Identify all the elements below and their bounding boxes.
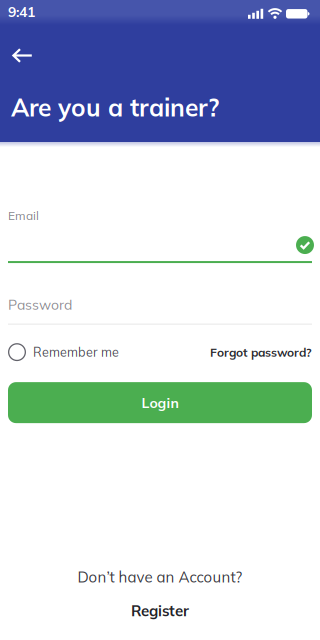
staticText: 9:41 (8, 3, 35, 21)
button[interactable]: Login (8, 382, 312, 423)
button[interactable]: Forgot password? (210, 345, 312, 360)
button[interactable]: Back (0, 0, 33, 63)
staticText: Login (141, 394, 178, 411)
button[interactable]: Remember me (8, 343, 119, 361)
staticText: Forgot password? (210, 345, 312, 360)
staticText: Password (8, 296, 72, 313)
staticText: Email (8, 208, 39, 223)
button[interactable]: Register (131, 586, 189, 620)
staticText: Remember me (33, 344, 119, 360)
staticText: Don’t have an Account? (77, 567, 242, 586)
staticText: Register (131, 601, 189, 620)
staticText: Are you a trainer? (11, 92, 219, 123)
